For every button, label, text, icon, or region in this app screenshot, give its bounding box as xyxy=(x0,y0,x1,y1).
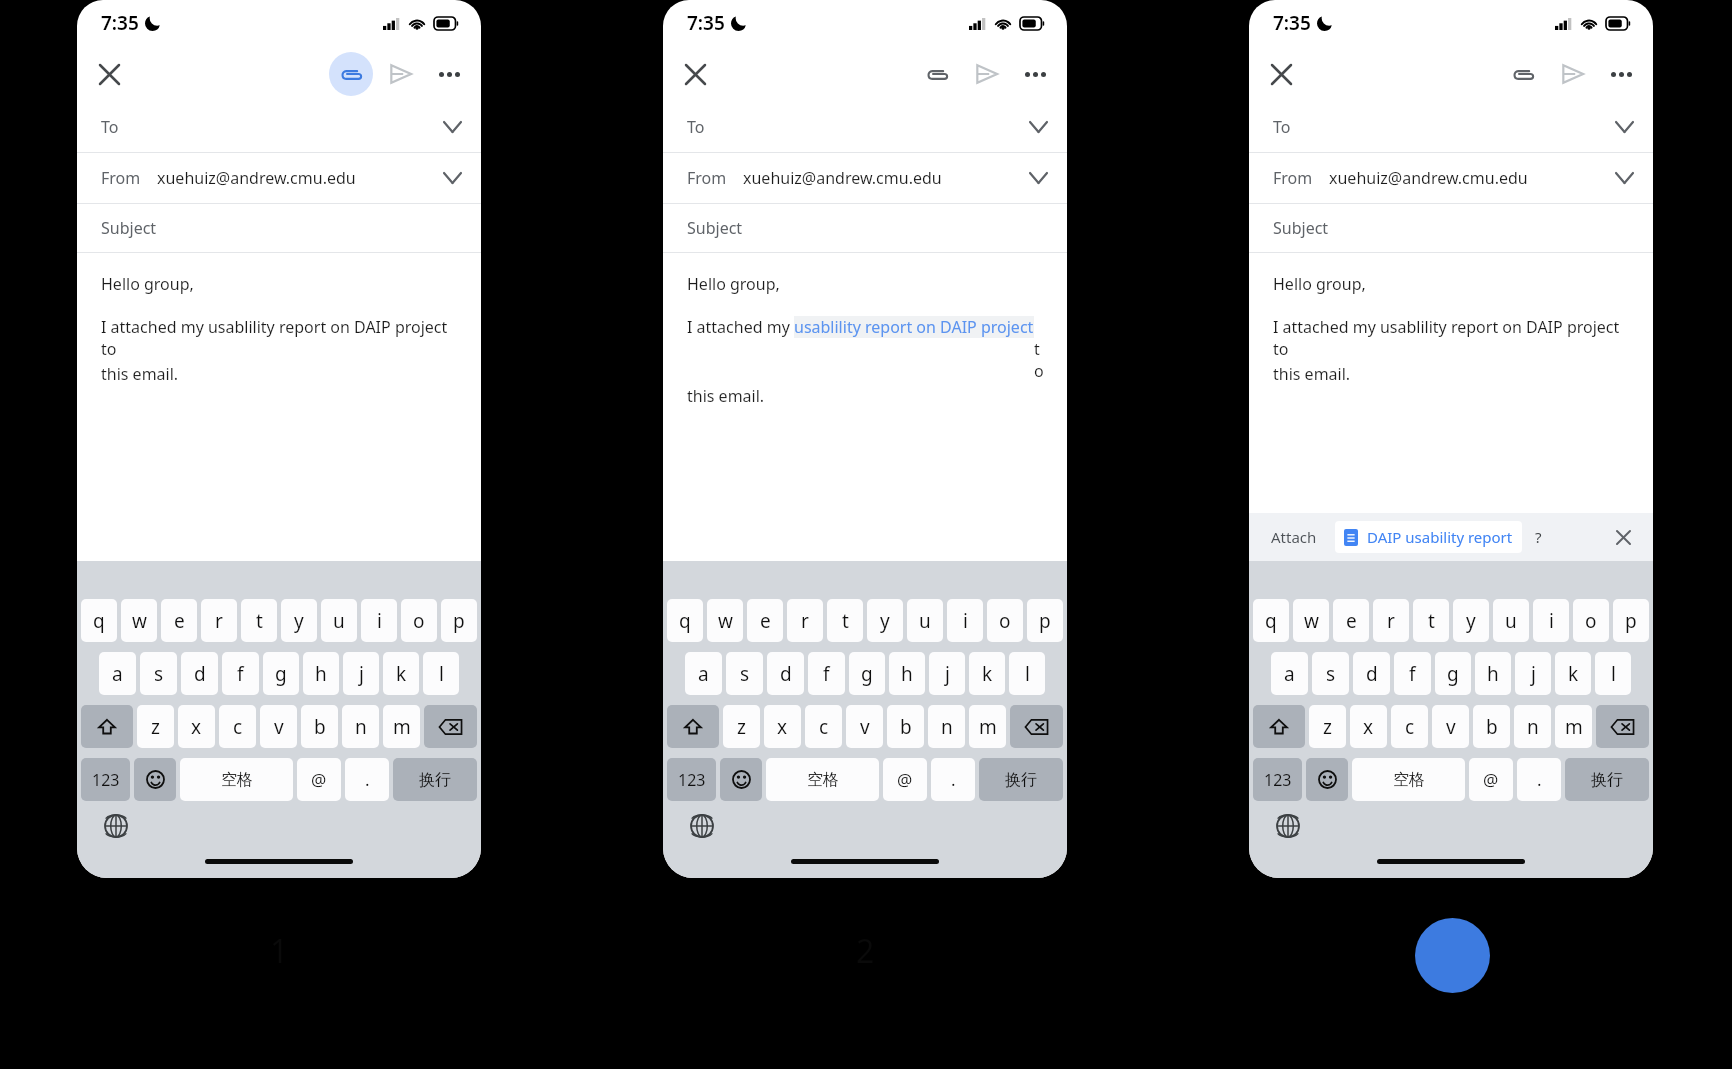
button[interactable]: w xyxy=(1293,599,1329,642)
button[interactable]: Subject xyxy=(663,204,1067,252)
button[interactable]: Backspace xyxy=(1010,705,1063,748)
button[interactable]: o xyxy=(1573,599,1609,642)
button[interactable]: Change keyboard xyxy=(685,809,719,843)
button[interactable]: Attach file xyxy=(1501,52,1545,96)
button[interactable]: @ xyxy=(297,758,341,801)
button[interactable]: f xyxy=(808,652,845,695)
button[interactable]: s xyxy=(140,652,177,695)
button[interactable]: m xyxy=(969,705,1006,748)
button[interactable]: Send xyxy=(965,52,1009,96)
button[interactable]: k xyxy=(969,652,1005,695)
button[interactable]: More options xyxy=(427,52,471,96)
button[interactable]: j xyxy=(929,652,965,695)
button[interactable]: p xyxy=(1613,599,1649,642)
button[interactable]: To xyxy=(1249,102,1653,152)
button[interactable]: c xyxy=(1391,705,1428,748)
button[interactable]: r xyxy=(201,599,237,642)
button[interactable]: @ xyxy=(883,758,927,801)
button[interactable]: k xyxy=(1555,652,1591,695)
button[interactable]: l xyxy=(1009,652,1045,695)
button[interactable]: f xyxy=(1394,652,1431,695)
button[interactable]: q xyxy=(667,599,703,642)
button[interactable]: p xyxy=(441,599,477,642)
button[interactable]: o xyxy=(401,599,437,642)
button[interactable]: v xyxy=(1432,705,1469,748)
button[interactable]: From xyxy=(663,153,1067,203)
button[interactable]: u xyxy=(321,599,357,642)
button[interactable]: . xyxy=(1517,758,1561,801)
button[interactable]: 换行 xyxy=(1565,758,1649,801)
button[interactable]: j xyxy=(1515,652,1551,695)
button[interactable]: v xyxy=(846,705,883,748)
button[interactable]: y xyxy=(281,599,317,642)
button[interactable]: a xyxy=(99,652,136,695)
button[interactable]: y xyxy=(867,599,903,642)
button[interactable]: n xyxy=(342,705,379,748)
button[interactable]: l xyxy=(1595,652,1631,695)
button[interactable]: Close xyxy=(1259,52,1303,96)
button[interactable]: Shift xyxy=(81,705,133,748)
button[interactable]: . xyxy=(931,758,975,801)
button[interactable]: u xyxy=(1493,599,1529,642)
button[interactable]: x xyxy=(764,705,801,748)
button[interactable]: d xyxy=(181,652,218,695)
button[interactable]: 空格 xyxy=(180,758,293,801)
button[interactable]: t xyxy=(1413,599,1449,642)
button[interactable]: d xyxy=(1353,652,1390,695)
button[interactable]: r xyxy=(787,599,823,642)
button[interactable]: z xyxy=(137,705,174,748)
button[interactable]: 123 xyxy=(667,758,716,801)
button[interactable]: . xyxy=(345,758,389,801)
button[interactable]: h xyxy=(889,652,925,695)
button[interactable]: c xyxy=(219,705,256,748)
button[interactable]: g xyxy=(263,652,299,695)
button[interactable]: 空格 xyxy=(766,758,879,801)
button[interactable]: Remove attachment xyxy=(1609,523,1637,551)
button[interactable]: Shift xyxy=(1253,705,1305,748)
button[interactable]: g xyxy=(1435,652,1471,695)
button[interactable]: u xyxy=(907,599,943,642)
button[interactable]: To xyxy=(77,102,481,152)
button[interactable]: b xyxy=(887,705,924,748)
button[interactable]: Backspace xyxy=(424,705,477,748)
button[interactable]: v xyxy=(260,705,297,748)
button[interactable]: d xyxy=(767,652,804,695)
button[interactable]: Subject xyxy=(1249,204,1653,252)
button[interactable]: z xyxy=(723,705,760,748)
button[interactable]: o xyxy=(987,599,1023,642)
button[interactable]: s xyxy=(1312,652,1349,695)
button[interactable]: n xyxy=(928,705,965,748)
button[interactable]: From xyxy=(77,153,481,203)
button[interactable]: Close xyxy=(673,52,717,96)
button[interactable]: e xyxy=(161,599,197,642)
button[interactable]: f xyxy=(222,652,259,695)
button[interactable]: x xyxy=(178,705,215,748)
button[interactable]: z xyxy=(1309,705,1346,748)
button[interactable]: Change keyboard xyxy=(1271,809,1305,843)
button[interactable]: Change keyboard xyxy=(99,809,133,843)
button[interactable]: 换行 xyxy=(979,758,1063,801)
button[interactable]: m xyxy=(1555,705,1592,748)
button[interactable]: Attach file xyxy=(915,52,959,96)
button[interactable]: More options xyxy=(1013,52,1057,96)
button[interactable]: h xyxy=(1475,652,1511,695)
button[interactable]: 123 xyxy=(81,758,130,801)
button[interactable]: a xyxy=(685,652,722,695)
button[interactable]: n xyxy=(1514,705,1551,748)
button[interactable]: 换行 xyxy=(393,758,477,801)
button[interactable]: r xyxy=(1373,599,1409,642)
button[interactable]: x xyxy=(1350,705,1387,748)
button[interactable]: p xyxy=(1027,599,1063,642)
button[interactable]: q xyxy=(1253,599,1289,642)
button[interactable]: Emoji xyxy=(1306,758,1348,801)
button[interactable]: w xyxy=(707,599,743,642)
button[interactable]: t xyxy=(241,599,277,642)
button[interactable]: i xyxy=(947,599,983,642)
button[interactable]: 123 xyxy=(1253,758,1302,801)
button[interactable]: Send xyxy=(1551,52,1595,96)
button[interactable]: c xyxy=(805,705,842,748)
button[interactable]: Emoji xyxy=(720,758,762,801)
button[interactable]: s xyxy=(726,652,763,695)
button[interactable]: To xyxy=(663,102,1067,152)
button[interactable]: b xyxy=(1473,705,1510,748)
